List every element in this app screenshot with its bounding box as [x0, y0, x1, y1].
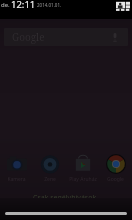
button[interactable]: Home [5, 212, 127, 215]
staticText: Google [12, 30, 45, 44]
staticText: de. [1, 1, 10, 9]
staticText: Kamera [7, 176, 26, 182]
other: Signal and battery status [116, 0, 130, 10]
staticText: Play Áruház [69, 176, 97, 182]
button[interactable]: Play Áruház [66, 152, 99, 182]
staticText: Google [107, 176, 124, 182]
staticText: Csak segélyhívások. [33, 193, 99, 203]
button[interactable]: Zene [33, 152, 66, 182]
button[interactable]: Voice search [111, 32, 119, 43]
staticText: Zene [44, 176, 56, 182]
button[interactable]: Kamera [0, 152, 33, 182]
staticText: 12:11 [11, 0, 36, 11]
button[interactable]: Google [99, 152, 132, 182]
staticText: 2014.01.01. [37, 2, 62, 8]
